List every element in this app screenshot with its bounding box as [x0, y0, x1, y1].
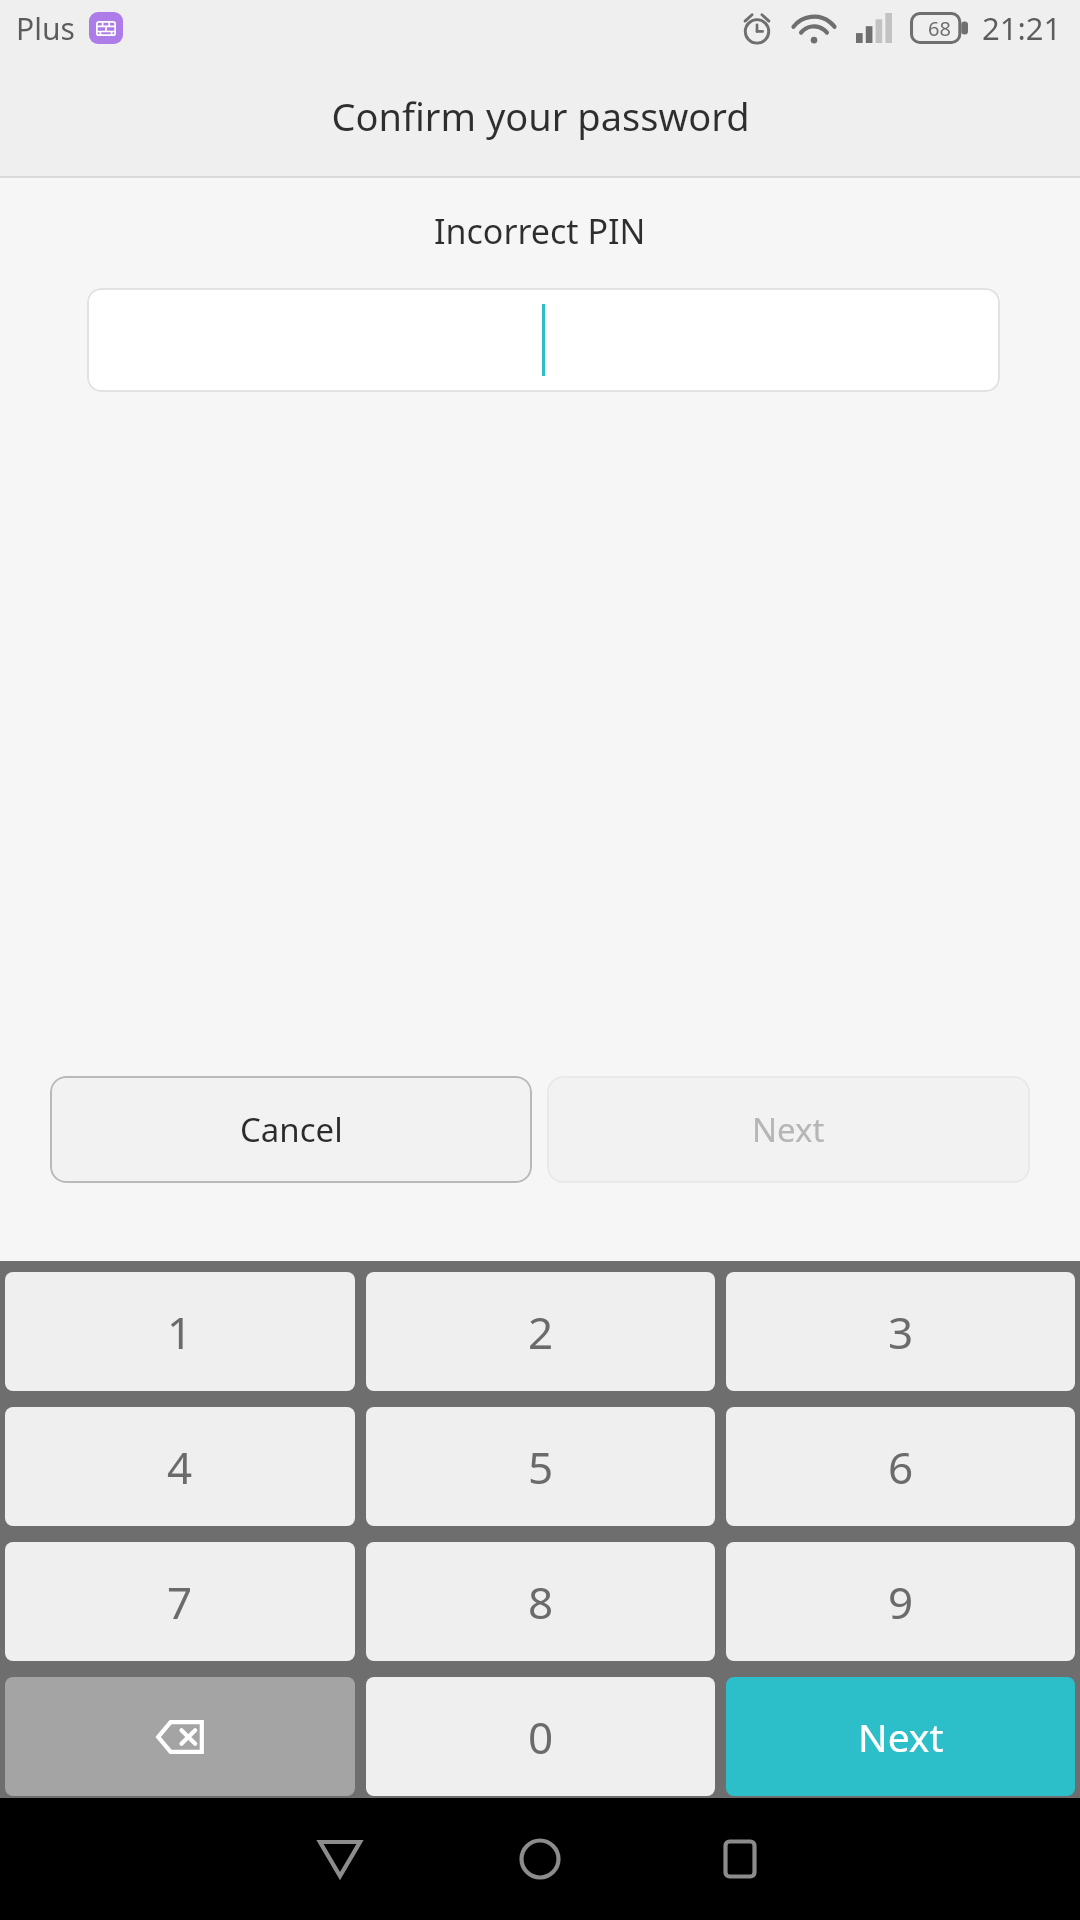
staticText: 21:21	[982, 7, 1062, 49]
button[interactable]	[87, 288, 1000, 392]
button[interactable]: 4	[5, 1407, 355, 1526]
button[interactable]: 0	[366, 1677, 715, 1796]
staticText: Confirm your password	[331, 90, 750, 142]
button[interactable]: 3	[726, 1272, 1075, 1391]
button[interactable]: 9	[726, 1542, 1075, 1661]
staticText: 0	[528, 1707, 554, 1767]
button[interactable]: Home	[472, 1798, 608, 1920]
staticText: Incorrect PIN	[434, 208, 646, 254]
staticText: 4	[167, 1437, 193, 1497]
button[interactable]: Delete	[5, 1677, 355, 1796]
button[interactable]: Next	[547, 1076, 1030, 1183]
button[interactable]: 2	[366, 1272, 715, 1391]
staticText: 8	[528, 1572, 554, 1632]
staticText: Next	[752, 1107, 825, 1152]
button[interactable]: Cancel	[50, 1076, 532, 1183]
staticText: 68	[928, 15, 951, 42]
button[interactable]: Next	[726, 1677, 1075, 1796]
staticText: 6	[888, 1437, 914, 1497]
button[interactable]: 1	[5, 1272, 355, 1391]
button[interactable]: 5	[366, 1407, 715, 1526]
staticText: Cancel	[240, 1107, 343, 1152]
button[interactable]: 7	[5, 1542, 355, 1661]
staticText: 5	[528, 1437, 554, 1497]
staticText: 1	[167, 1302, 193, 1362]
staticText: Plus	[16, 8, 75, 49]
staticText: 2	[528, 1302, 554, 1362]
button[interactable]: Back	[272, 1798, 408, 1920]
staticText: 9	[888, 1572, 914, 1632]
staticText: 3	[888, 1302, 914, 1362]
button[interactable]: 8	[366, 1542, 715, 1661]
staticText: Next	[858, 1710, 944, 1763]
button[interactable]: Recents	[672, 1798, 808, 1920]
staticText: 7	[167, 1572, 193, 1632]
button[interactable]: 6	[726, 1407, 1075, 1526]
